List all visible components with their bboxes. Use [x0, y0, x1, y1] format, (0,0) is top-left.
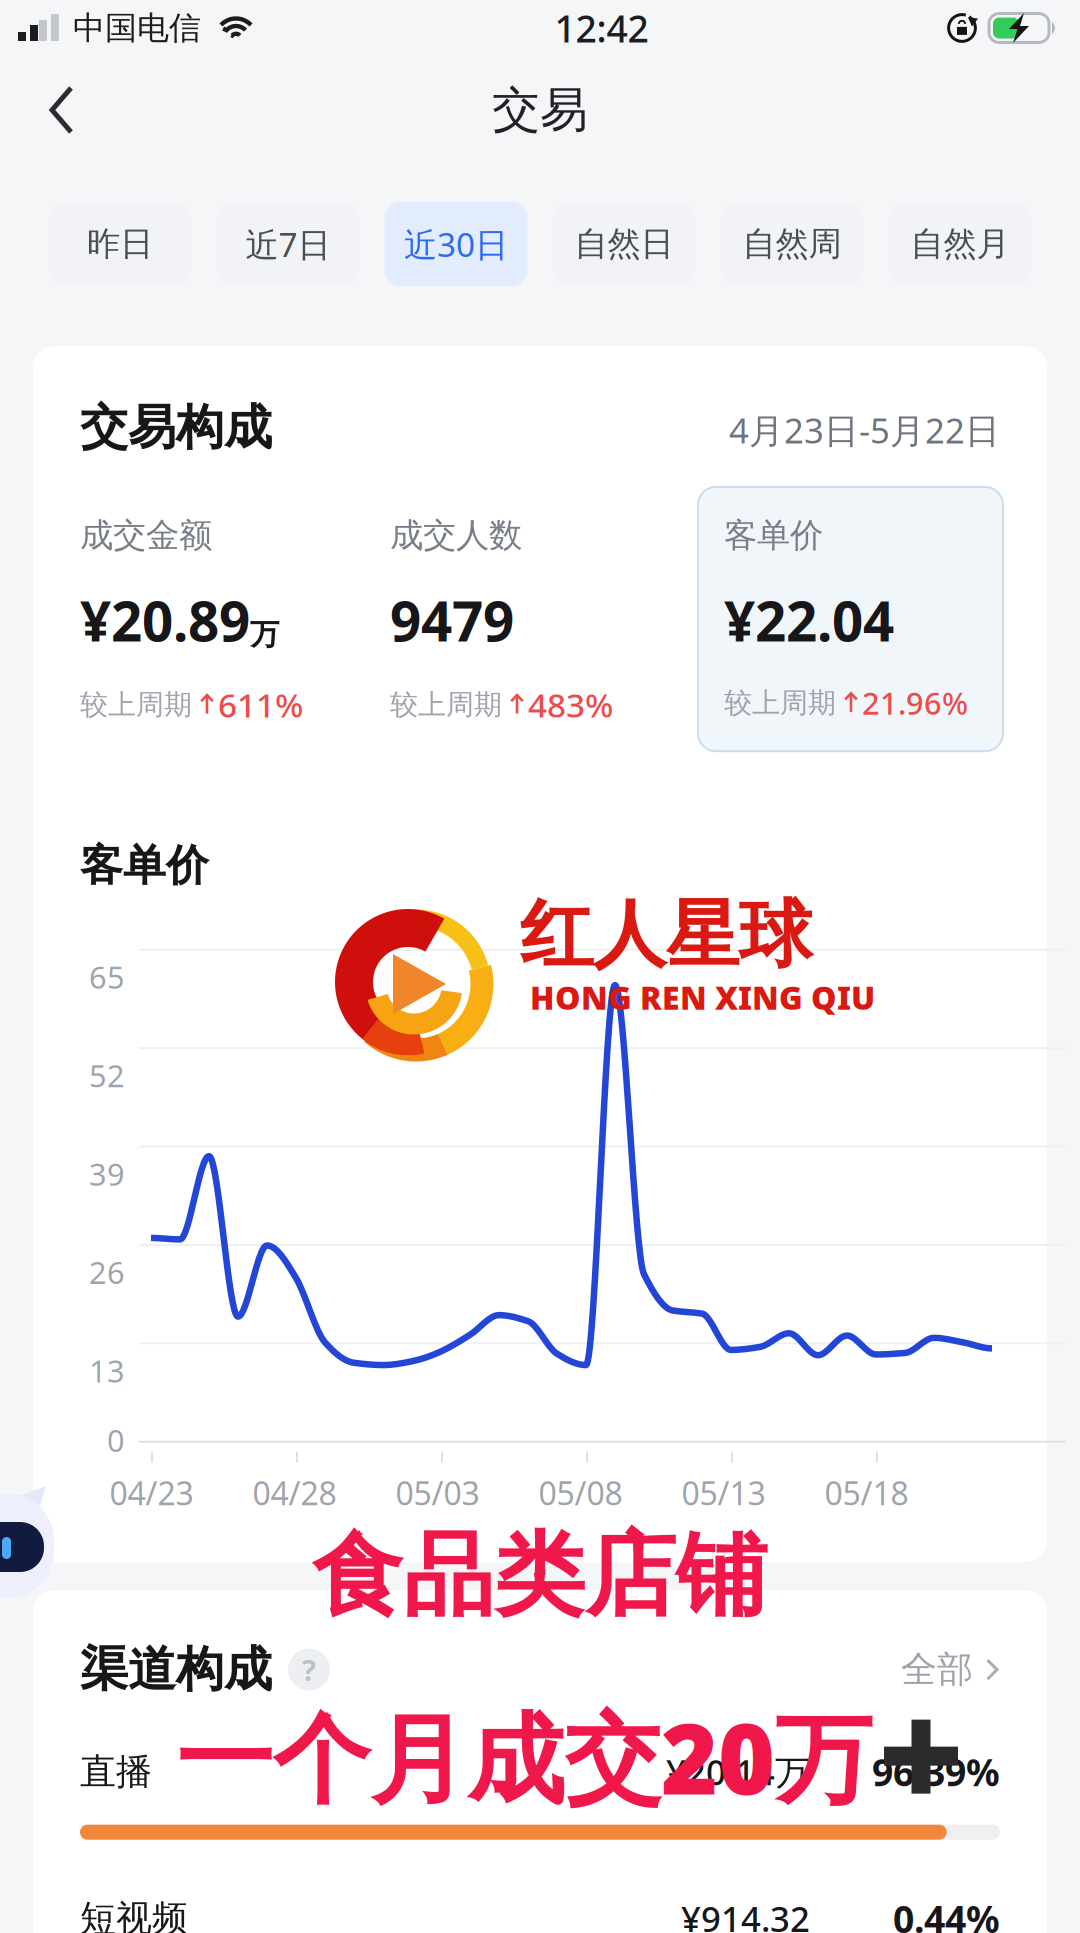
button[interactable]: 自然月: [888, 202, 1031, 286]
staticText: 自然周: [742, 223, 841, 264]
staticText: 较上周期: [724, 686, 836, 720]
staticText: 食品类店铺: [312, 1520, 767, 1631]
staticText: 近30日: [404, 222, 508, 266]
staticText: 12:42: [554, 3, 648, 53]
staticText: 中国电信: [73, 8, 201, 48]
staticText: 直播: [80, 1750, 152, 1794]
button[interactable]: 近30日: [384, 202, 527, 286]
staticText: 较上周期: [80, 687, 192, 722]
staticText: 96.39%: [872, 1747, 1000, 1797]
staticText: 红人星球: [520, 890, 812, 980]
staticText: 较上周期: [390, 687, 502, 722]
button[interactable]: 自然周: [720, 202, 863, 286]
button[interactable]: 自然日: [552, 202, 695, 286]
staticText: 客单价: [724, 515, 823, 556]
staticText: 39: [89, 1153, 125, 1194]
staticText: 65: [89, 957, 125, 997]
staticText: HONG REN XING QIU: [530, 976, 875, 1019]
staticText: 成交金额: [80, 515, 212, 556]
staticText: 全部: [901, 1647, 973, 1692]
staticText: 04/28: [252, 1472, 336, 1514]
staticText: 一个月成交20万: [176, 1692, 872, 1821]
staticText: 611%: [218, 682, 303, 727]
staticText: ¥914.32: [681, 1895, 810, 1933]
staticText: 05/08: [538, 1472, 622, 1514]
staticText: 26: [89, 1252, 125, 1292]
staticText: 万: [250, 616, 279, 652]
staticText: 0: [107, 1420, 125, 1460]
staticText: 交易构成: [80, 398, 272, 457]
staticText: ?: [302, 1650, 316, 1689]
staticText: 21.96%: [862, 682, 968, 723]
staticText: 04/23: [109, 1472, 193, 1514]
staticText: 0.44%: [893, 1894, 1000, 1933]
staticText: 自然日: [574, 223, 673, 264]
staticText: ¥22.04: [724, 584, 894, 656]
button[interactable]: 返回: [14, 62, 110, 158]
staticText: 483%: [528, 682, 613, 727]
staticText: 13: [89, 1350, 125, 1391]
staticText: 4月23日-5月22日: [729, 407, 1000, 453]
staticText: 05/03: [395, 1472, 479, 1514]
staticText: 05/18: [824, 1472, 908, 1514]
staticText: 渠道构成: [80, 1640, 272, 1699]
staticText: 客单价: [80, 839, 209, 892]
staticText: 9479: [390, 584, 514, 656]
staticText: 昨日: [87, 223, 153, 264]
button[interactable]: 全部: [901, 1647, 1000, 1692]
staticText: ¥20.89: [80, 584, 250, 656]
button[interactable]: 昨日: [48, 202, 191, 286]
staticText: 短视频: [80, 1896, 188, 1933]
staticText: 成交人数: [390, 515, 522, 556]
staticText: 近7日: [245, 222, 330, 266]
staticText: 自然月: [910, 223, 1009, 264]
staticText: 05/13: [681, 1472, 765, 1514]
button[interactable]: 近7日: [216, 202, 359, 286]
staticText: 52: [89, 1055, 125, 1096]
staticText: ¥20.14万: [666, 1749, 810, 1795]
staticText: 交易: [492, 80, 588, 139]
